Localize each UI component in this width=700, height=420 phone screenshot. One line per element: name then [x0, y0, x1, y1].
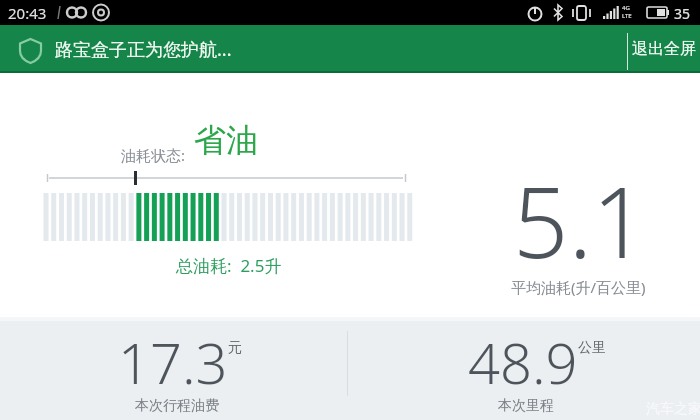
staticText: 汽车之家 [646, 400, 700, 418]
staticText: 路宝盒子正为您护航... [55, 37, 232, 62]
staticText: 总油耗: 2.5升 [176, 254, 282, 277]
button[interactable]: 17.3 [0, 317, 347, 420]
staticText: 5.1 [513, 154, 648, 286]
staticText: 平均油耗(升/百公里) [511, 277, 646, 297]
button[interactable]: 退出全屏 [628, 25, 700, 73]
staticText: 省油 [194, 120, 258, 160]
staticText: 元 [228, 339, 242, 357]
staticText: 公里 [578, 339, 606, 357]
staticText: 48.9 [468, 324, 578, 400]
staticText: 20:43 [8, 3, 47, 23]
staticText: 油耗状态: [121, 145, 186, 165]
button[interactable]: 48.9 [348, 317, 700, 420]
staticText: 35 [674, 4, 691, 23]
staticText: 退出全屏 [632, 39, 696, 59]
staticText: 本次行程油费 [135, 397, 219, 415]
staticText: 4G LTE [622, 4, 632, 20]
staticText: 本次里程 [498, 397, 554, 415]
staticText: 17.3 [118, 324, 228, 400]
